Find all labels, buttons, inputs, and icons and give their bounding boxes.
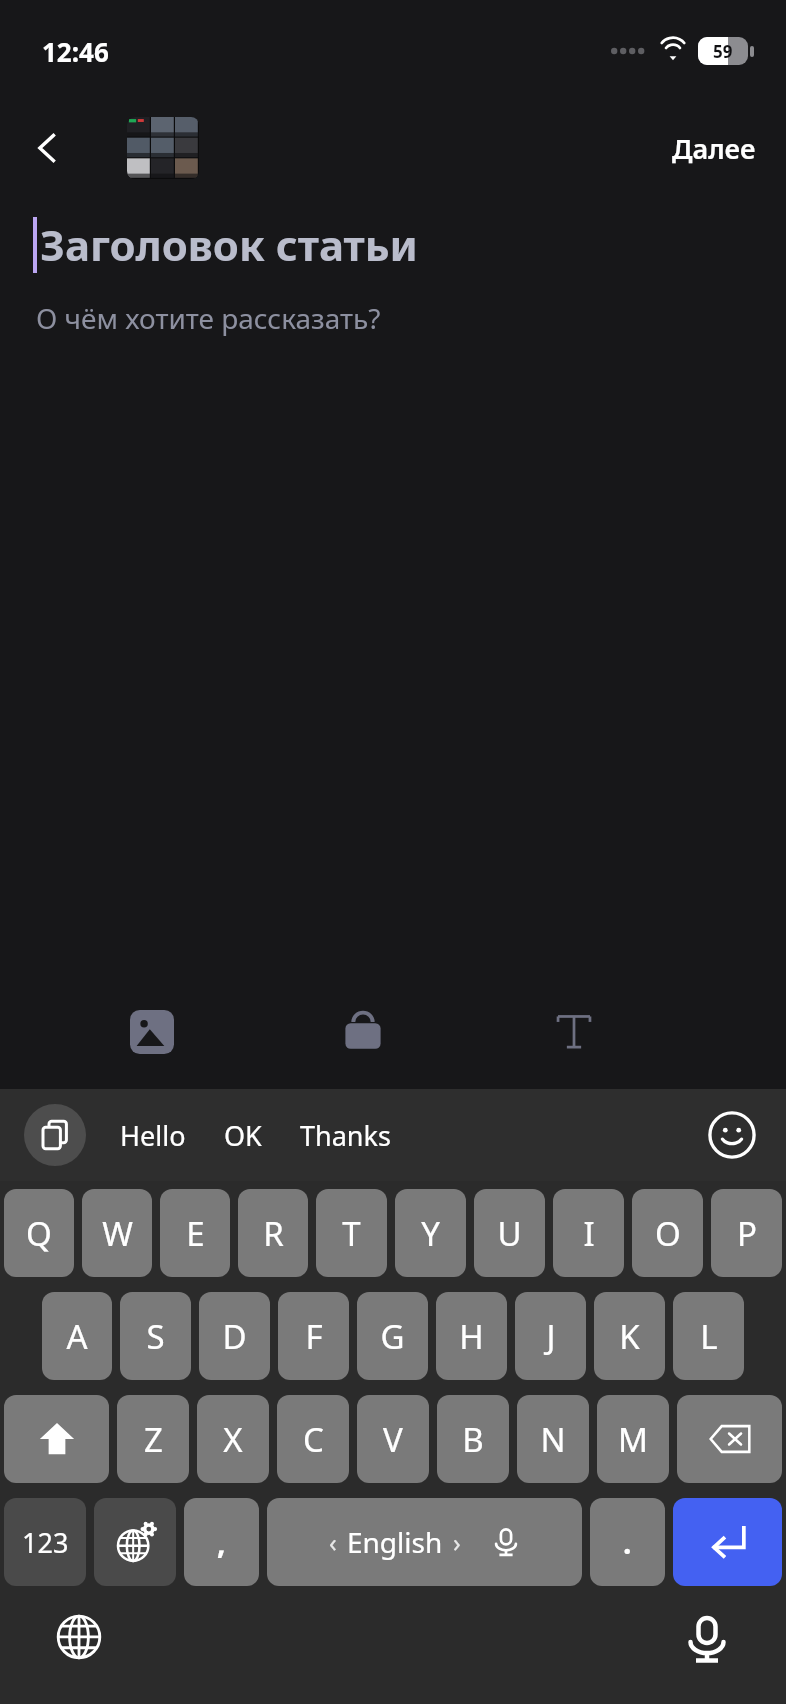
button[interactable]: Insert image: [120, 1000, 184, 1064]
button[interactable]: OK: [216, 1111, 270, 1160]
staticText: Q: [26, 1211, 52, 1256]
staticText: F: [305, 1314, 323, 1359]
button[interactable]: Products: [331, 1000, 395, 1064]
button[interactable]: F: [278, 1292, 349, 1380]
staticText: Заголовок статьи: [40, 216, 418, 273]
button[interactable]: B: [437, 1395, 509, 1483]
button[interactable]: S: [120, 1292, 191, 1380]
button[interactable]: О чём хотите рассказать?: [36, 299, 786, 337]
staticText: G: [380, 1314, 405, 1359]
button[interactable]: Clipboard: [24, 1104, 86, 1166]
button[interactable]: Hello: [112, 1111, 194, 1160]
staticText: V: [383, 1417, 403, 1462]
button[interactable]: G: [357, 1292, 428, 1380]
button[interactable]: O: [632, 1189, 703, 1277]
staticText: OK: [224, 1117, 262, 1154]
staticText: Далее: [672, 130, 756, 167]
button[interactable]: Y: [395, 1189, 466, 1277]
button[interactable]: N: [517, 1395, 589, 1483]
button[interactable]: Back: [18, 118, 78, 178]
button[interactable]: Emoji: [704, 1107, 760, 1163]
staticText: English: [347, 1523, 443, 1561]
staticText: P: [737, 1211, 757, 1256]
button[interactable]: Q: [4, 1189, 74, 1277]
button[interactable]: Thanks: [292, 1111, 399, 1160]
staticText: X: [223, 1417, 243, 1462]
button[interactable]: Preview: [127, 117, 199, 179]
staticText: H: [459, 1314, 484, 1359]
button[interactable]: L: [673, 1292, 744, 1380]
staticText: M: [618, 1417, 648, 1462]
button[interactable]: A: [42, 1292, 112, 1380]
staticText: Z: [144, 1417, 163, 1462]
staticText: 12:46: [42, 34, 109, 69]
staticText: K: [619, 1314, 640, 1359]
staticText: A: [66, 1314, 88, 1359]
button[interactable]: W: [82, 1189, 152, 1277]
staticText: 59: [713, 40, 733, 63]
staticText: Thanks: [300, 1117, 391, 1154]
button[interactable]: R: [238, 1189, 308, 1277]
staticText: E: [186, 1211, 205, 1256]
button[interactable]: Text format: [542, 1000, 606, 1064]
button[interactable]: ,: [184, 1498, 259, 1586]
button[interactable]: Change language: [94, 1498, 176, 1586]
staticText: 123: [22, 1524, 69, 1561]
staticText: W: [102, 1211, 133, 1256]
button[interactable]: Voice input: [672, 1604, 742, 1674]
button[interactable]: T: [316, 1189, 387, 1277]
staticText: S: [146, 1314, 165, 1359]
staticText: B: [462, 1417, 484, 1462]
staticText: I: [583, 1211, 595, 1256]
button[interactable]: E: [160, 1189, 230, 1277]
button[interactable]: V: [357, 1395, 429, 1483]
staticText: C: [303, 1417, 324, 1462]
staticText: U: [497, 1211, 522, 1256]
button[interactable]: J: [515, 1292, 586, 1380]
staticText: T: [342, 1211, 361, 1256]
staticText: J: [546, 1314, 556, 1359]
button[interactable]: .: [590, 1498, 665, 1586]
button[interactable]: D: [199, 1292, 270, 1380]
staticText: O: [655, 1211, 681, 1256]
button[interactable]: U: [474, 1189, 545, 1277]
staticText: .: [623, 1522, 632, 1563]
staticText: ›: [453, 1525, 461, 1559]
staticText: R: [263, 1211, 284, 1256]
staticText: О чём хотите рассказать?: [36, 299, 381, 337]
button[interactable]: Далее: [656, 120, 772, 177]
staticText: Hello: [120, 1117, 186, 1154]
button[interactable]: Switch keyboard: [44, 1604, 114, 1674]
button[interactable]: 123: [4, 1498, 86, 1586]
staticText: ,: [217, 1522, 226, 1563]
button[interactable]: M: [597, 1395, 669, 1483]
button[interactable]: K: [594, 1292, 665, 1380]
staticText: ‹: [329, 1525, 337, 1559]
button[interactable]: Backspace: [677, 1395, 782, 1483]
button[interactable]: H: [436, 1292, 507, 1380]
button[interactable]: Заголовок статьи: [33, 216, 786, 273]
staticText: D: [222, 1314, 247, 1359]
button[interactable]: Z: [117, 1395, 189, 1483]
button[interactable]: C: [277, 1395, 349, 1483]
button[interactable]: X: [197, 1395, 269, 1483]
button[interactable]: I: [553, 1189, 624, 1277]
button[interactable]: P: [711, 1189, 782, 1277]
button[interactable]: Enter: [673, 1498, 782, 1586]
button[interactable]: Shift: [4, 1395, 109, 1483]
staticText: L: [700, 1314, 718, 1359]
staticText: Y: [421, 1211, 440, 1256]
button[interactable]: Space: [267, 1498, 582, 1586]
staticText: N: [540, 1417, 566, 1462]
